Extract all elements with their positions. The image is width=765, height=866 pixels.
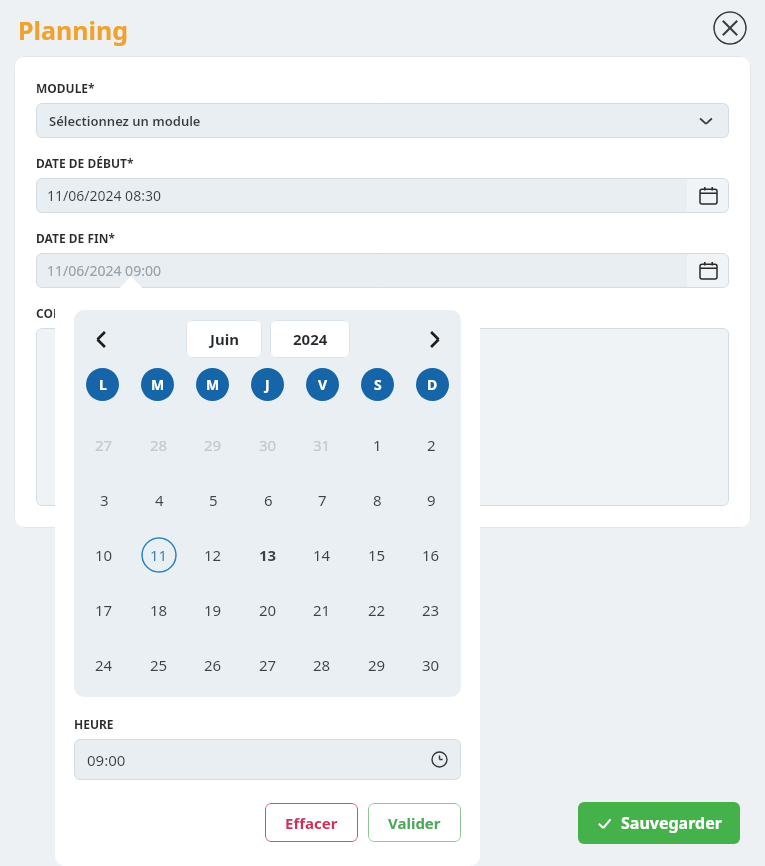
staticText: 28 [313,655,331,675]
staticText: 11 [150,545,168,565]
staticText: Planning [18,13,128,47]
staticText: L [99,375,107,394]
staticText: HEURE [74,716,114,732]
staticText: 26 [204,655,222,675]
button[interactable]: Effacer [265,803,358,842]
button[interactable]: 2 [413,427,449,463]
button[interactable] [36,328,729,506]
button[interactable]: Ouvrir le calendrier [687,178,729,213]
staticText: Effacer [285,813,338,833]
staticText: 8 [373,490,382,510]
button[interactable]: 15 [359,537,395,573]
button[interactable]: 09:00 [74,739,461,780]
staticText: 27 [259,655,277,675]
staticText: 16 [422,545,440,565]
button[interactable]: 28 [304,647,340,683]
staticText: 14 [313,545,331,565]
staticText: 29 [368,655,386,675]
staticText: 5 [209,490,218,510]
staticText: 25 [150,655,168,675]
button[interactable]: 20 [250,592,286,628]
staticText: 21 [313,600,331,620]
button[interactable]: 16 [413,537,449,573]
staticText: 12 [204,545,222,565]
staticText: 09:00 [87,750,126,770]
button[interactable]: 25 [141,647,177,683]
staticText: 20 [259,600,277,620]
staticText: 17 [95,600,113,620]
staticText: M [206,375,220,394]
button[interactable]: 7 [304,482,340,518]
button[interactable]: 27 [86,427,122,463]
staticText: 27 [95,435,113,455]
button[interactable]: 11 [141,537,177,573]
button[interactable]: Sélectionnez un module [36,103,729,138]
button[interactable]: 29 [195,427,231,463]
staticText: Sélectionnez un module [49,112,201,130]
button[interactable]: 2024 [270,320,350,358]
button[interactable]: 31 [304,427,340,463]
staticText: 7 [318,490,327,510]
button[interactable]: 24 [86,647,122,683]
staticText: 10 [95,545,113,565]
button[interactable]: Mois précédent [84,322,118,356]
staticText: 28 [150,435,168,455]
button[interactable]: Ouvrir le calendrier [687,253,729,288]
staticText: 24 [95,655,113,675]
button[interactable]: Mois suivant [417,322,451,356]
staticText: 29 [204,435,222,455]
staticText: 3 [100,490,109,510]
button[interactable]: 14 [304,537,340,573]
staticText: Juin [210,329,239,349]
button[interactable]: Valider [368,803,461,842]
staticText: 22 [368,600,386,620]
button[interactable]: Fermer [713,11,747,45]
staticText: 11/06/2024 08:30 [47,186,161,205]
button[interactable]: 11/06/2024 09:00 [36,253,729,288]
button[interactable]: Juin [186,320,262,358]
staticText: 11/06/2024 09:00 [47,261,161,280]
button[interactable]: 8 [359,482,395,518]
staticText: 2024 [293,329,328,349]
staticText: 4 [155,490,164,510]
staticText: J [265,375,270,394]
button[interactable]: 19 [195,592,231,628]
button[interactable]: 30 [250,427,286,463]
button[interactable]: 30 [413,647,449,683]
button[interactable]: 9 [413,482,449,518]
button[interactable]: Sauvegarder [578,802,740,844]
button[interactable]: 6 [250,482,286,518]
staticText: 30 [422,655,440,675]
button[interactable]: 28 [141,427,177,463]
staticText: D [427,375,438,394]
staticText: DATE DE FIN* [36,230,115,246]
staticText: COMMENTAIRE [36,305,126,321]
button[interactable]: 26 [195,647,231,683]
button[interactable]: 23 [413,592,449,628]
staticText: M [151,375,165,394]
staticText: 31 [313,435,331,455]
button[interactable]: 1 [359,427,395,463]
button[interactable]: 5 [195,482,231,518]
button[interactable]: 27 [250,647,286,683]
button[interactable]: 3 [86,482,122,518]
staticText: 9 [427,490,436,510]
button[interactable]: 11/06/2024 08:30 [36,178,729,213]
button[interactable]: 18 [141,592,177,628]
button[interactable]: 4 [141,482,177,518]
staticText: 23 [422,600,440,620]
button[interactable]: 10 [86,537,122,573]
staticText: S [374,375,382,394]
button[interactable]: 21 [304,592,340,628]
staticText: DATE DE DÉBUT* [36,155,134,171]
staticText: V [318,375,328,394]
button[interactable]: 17 [86,592,122,628]
staticText: 13 [259,545,277,565]
button[interactable]: 22 [359,592,395,628]
button[interactable]: 29 [359,647,395,683]
button[interactable]: 12 [195,537,231,573]
staticText: 1 [373,435,382,455]
button[interactable]: 13 [250,537,286,573]
staticText: MODULE* [36,80,95,96]
staticText: 18 [150,600,168,620]
